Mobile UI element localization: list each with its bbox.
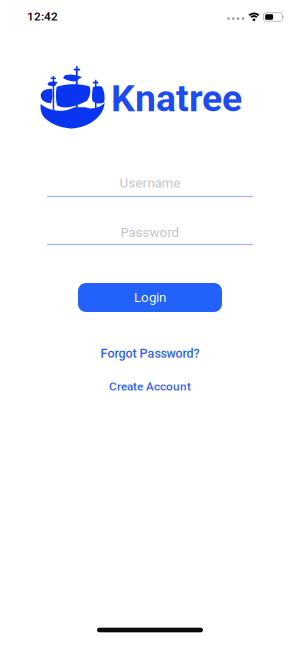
staticText: Knatree bbox=[111, 77, 242, 120]
button[interactable]: Login bbox=[78, 283, 222, 312]
staticText: Forgot Password? bbox=[100, 346, 199, 361]
button[interactable]: Username bbox=[47, 169, 253, 197]
staticText: 12:42 bbox=[27, 10, 58, 23]
staticText: Create Account bbox=[109, 380, 191, 393]
staticText: Password bbox=[120, 225, 179, 240]
button[interactable]: Password bbox=[47, 219, 253, 247]
button[interactable]: Forgot Password? bbox=[100, 346, 199, 361]
staticText: Username bbox=[119, 175, 180, 191]
staticText: Login bbox=[134, 290, 166, 305]
button[interactable]: Create Account bbox=[109, 380, 191, 393]
